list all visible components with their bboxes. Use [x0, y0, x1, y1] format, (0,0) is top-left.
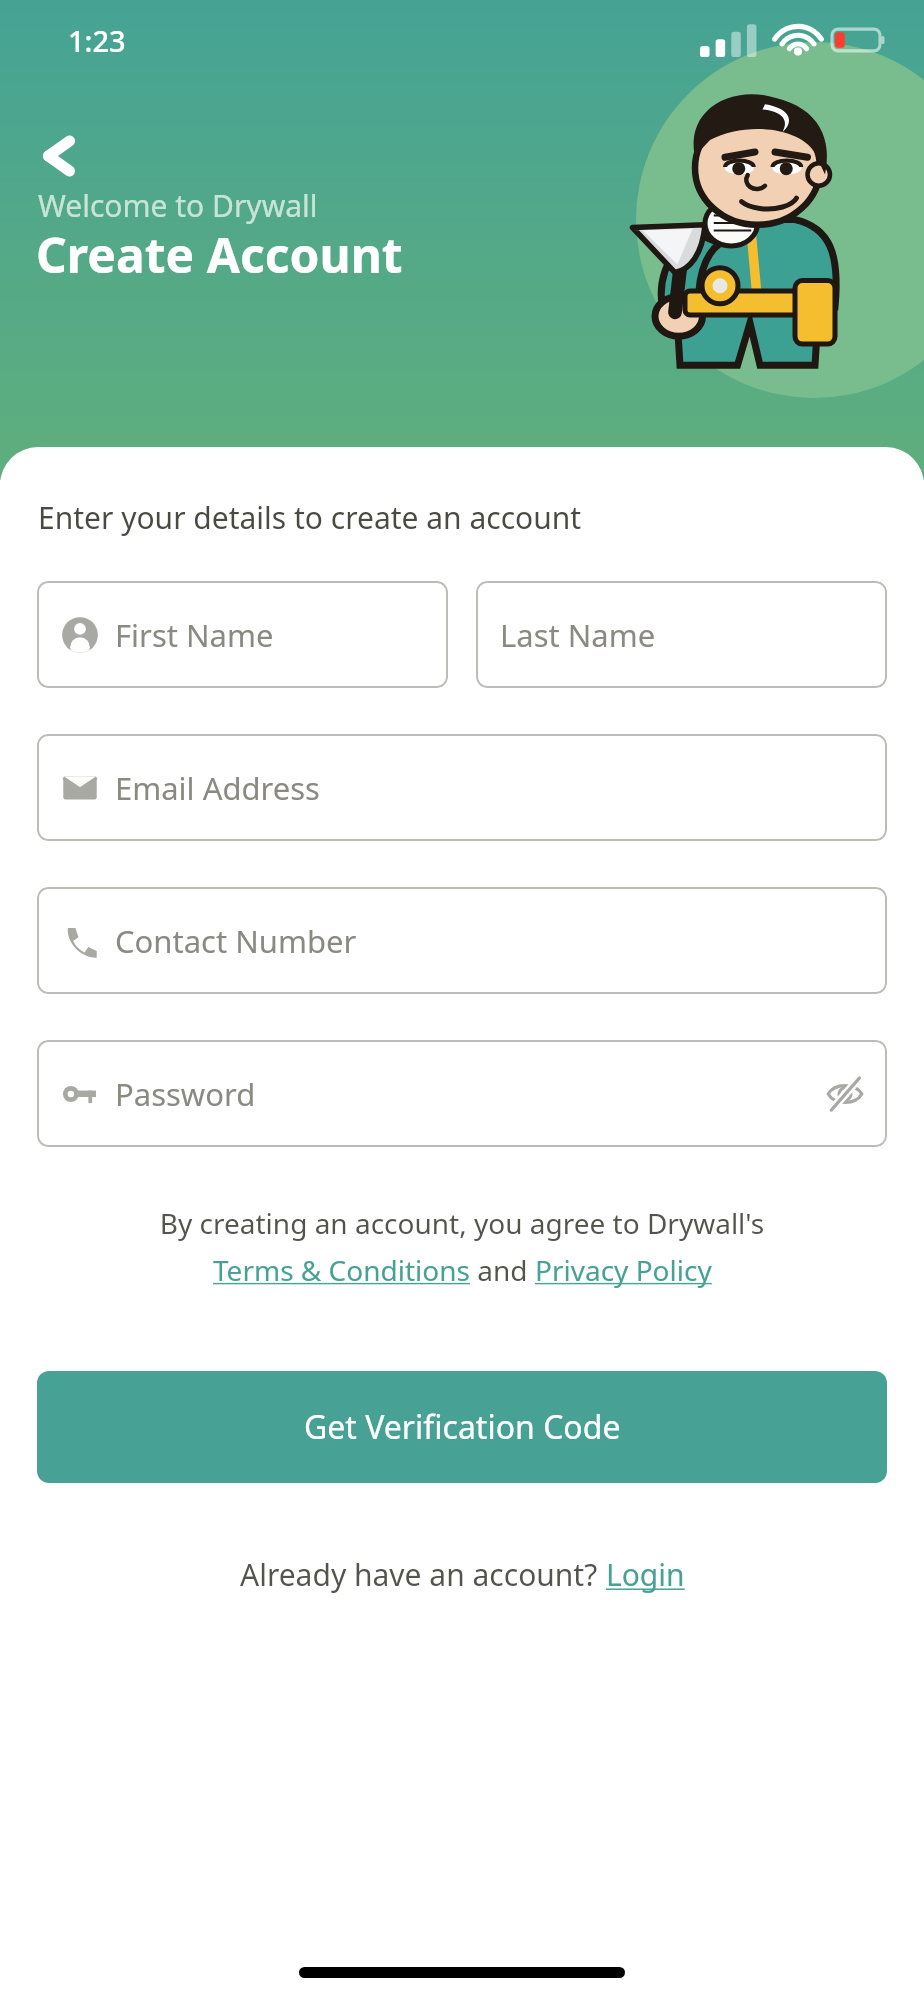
- button[interactable]: Last Name: [476, 581, 887, 688]
- button[interactable]: Privacy Policy: [535, 1251, 712, 1289]
- staticText: Last Name: [500, 614, 656, 656]
- button[interactable]: Get Verification Code: [37, 1371, 887, 1483]
- staticText: Email Address: [115, 767, 320, 809]
- button[interactable]: Show password: [825, 1074, 865, 1114]
- staticText: Privacy Policy: [535, 1251, 712, 1289]
- button[interactable]: First Name: [37, 581, 448, 688]
- button[interactable]: Contact Number: [37, 887, 887, 994]
- button[interactable]: Login: [606, 1554, 685, 1595]
- staticText: Terms & Conditions: [213, 1251, 470, 1289]
- staticText: Welcome to Drywall: [38, 185, 318, 226]
- staticText: Password: [115, 1073, 256, 1115]
- staticText: Get Verification Code: [304, 1405, 621, 1449]
- button[interactable]: Password: [37, 1040, 887, 1147]
- staticText: By creating an account, you agree to Dry…: [0, 1204, 924, 1242]
- staticText: First Name: [115, 614, 274, 656]
- button[interactable]: Terms & Conditions: [213, 1251, 470, 1289]
- button[interactable]: Email Address: [37, 734, 887, 841]
- staticText: 1:23: [68, 21, 126, 60]
- staticText: Create Account: [36, 222, 403, 287]
- staticText: Login: [606, 1554, 685, 1595]
- staticText: and: [470, 1251, 535, 1289]
- staticText: Already have an account?: [240, 1554, 606, 1595]
- staticText: Enter your details to create an account: [38, 497, 582, 538]
- staticText: Contact Number: [115, 920, 357, 962]
- button[interactable]: Back: [24, 120, 96, 192]
